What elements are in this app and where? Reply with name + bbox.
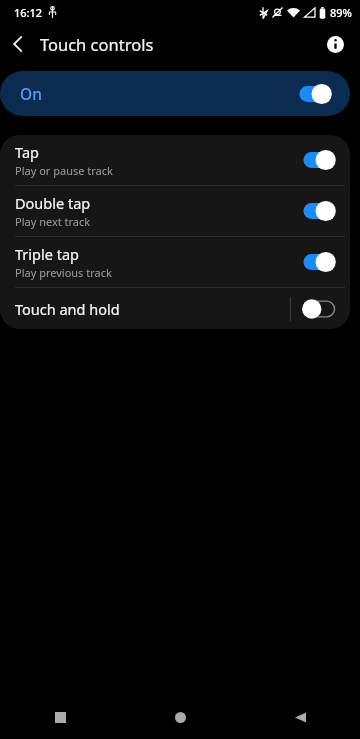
- staticText: Play or pause track: [15, 163, 113, 178]
- button[interactable]: Home: [120, 695, 240, 739]
- button[interactable]: On: [0, 71, 350, 116]
- button[interactable]: Triple tap: [0, 237, 350, 287]
- button[interactable]: Enabled: [300, 200, 338, 222]
- button[interactable]: Touch and hold: [0, 288, 350, 329]
- button[interactable]: Back: [0, 26, 36, 62]
- button[interactable]: Enabled: [296, 83, 334, 105]
- staticText: 16:12: [14, 5, 43, 20]
- button[interactable]: Enabled: [300, 251, 338, 273]
- button[interactable]: Tap: [0, 135, 350, 185]
- staticText: On: [20, 83, 42, 104]
- button[interactable]: Recent apps: [0, 695, 120, 739]
- button[interactable]: Disabled: [300, 298, 338, 320]
- staticText: Play next track: [15, 214, 91, 229]
- staticText: Touch controls: [40, 33, 154, 55]
- staticText: Tap: [15, 142, 39, 162]
- staticText: 89%: [330, 5, 352, 20]
- staticText: Play previous track: [15, 265, 112, 280]
- staticText: Double tap: [15, 193, 91, 213]
- staticText: Triple tap: [15, 244, 79, 264]
- button[interactable]: Back: [240, 695, 360, 739]
- button[interactable]: Double tap: [0, 186, 350, 236]
- staticText: Touch and hold: [15, 299, 120, 319]
- button[interactable]: Info: [318, 27, 352, 61]
- button[interactable]: Enabled: [300, 149, 338, 171]
